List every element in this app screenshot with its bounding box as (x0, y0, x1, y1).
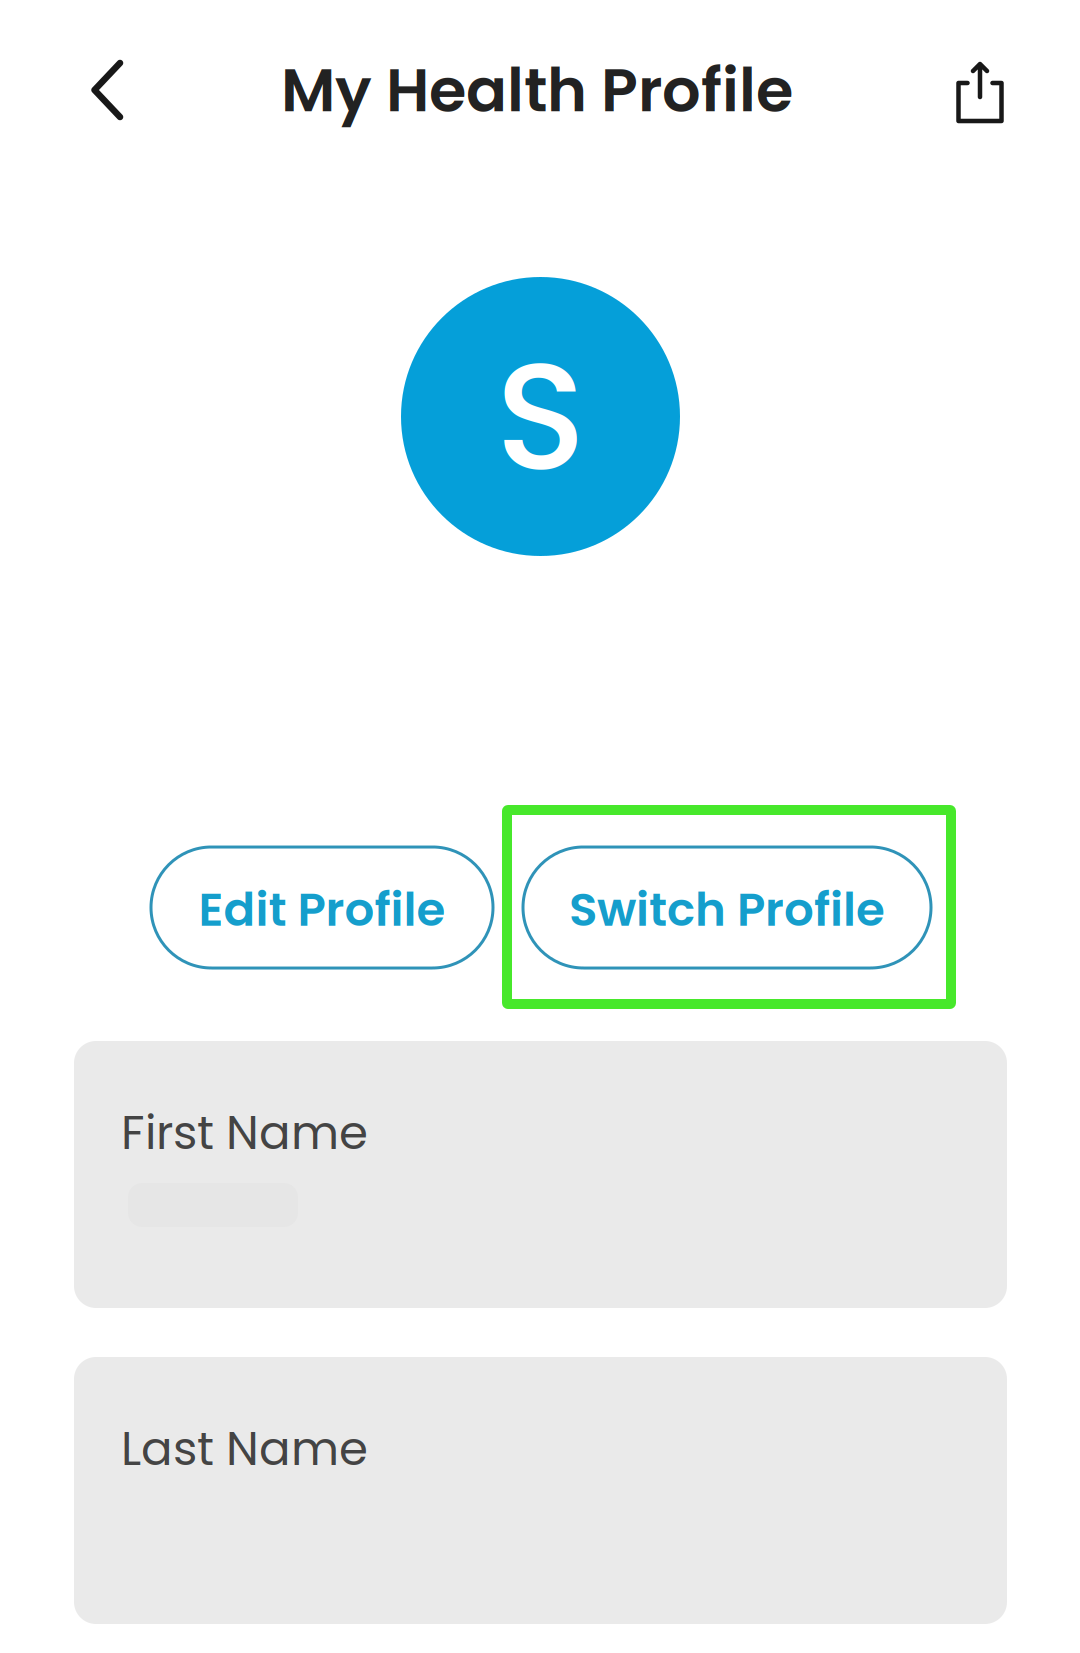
button[interactable]: Last Name (74, 1357, 1007, 1624)
staticText: Switch Profile (569, 877, 885, 942)
staticText: Last Name (121, 1416, 368, 1481)
button[interactable]: First Name (74, 1041, 1007, 1308)
button[interactable]: Edit Profile (151, 847, 493, 968)
button[interactable]: Switch Profile (523, 847, 931, 968)
staticText: S (495, 312, 585, 521)
button[interactable]: Back (51, 34, 163, 146)
staticText: My Health Profile (281, 48, 793, 132)
staticText: First Name (121, 1100, 368, 1165)
staticText: Edit Profile (198, 877, 445, 942)
button[interactable]: Share (924, 37, 1036, 149)
